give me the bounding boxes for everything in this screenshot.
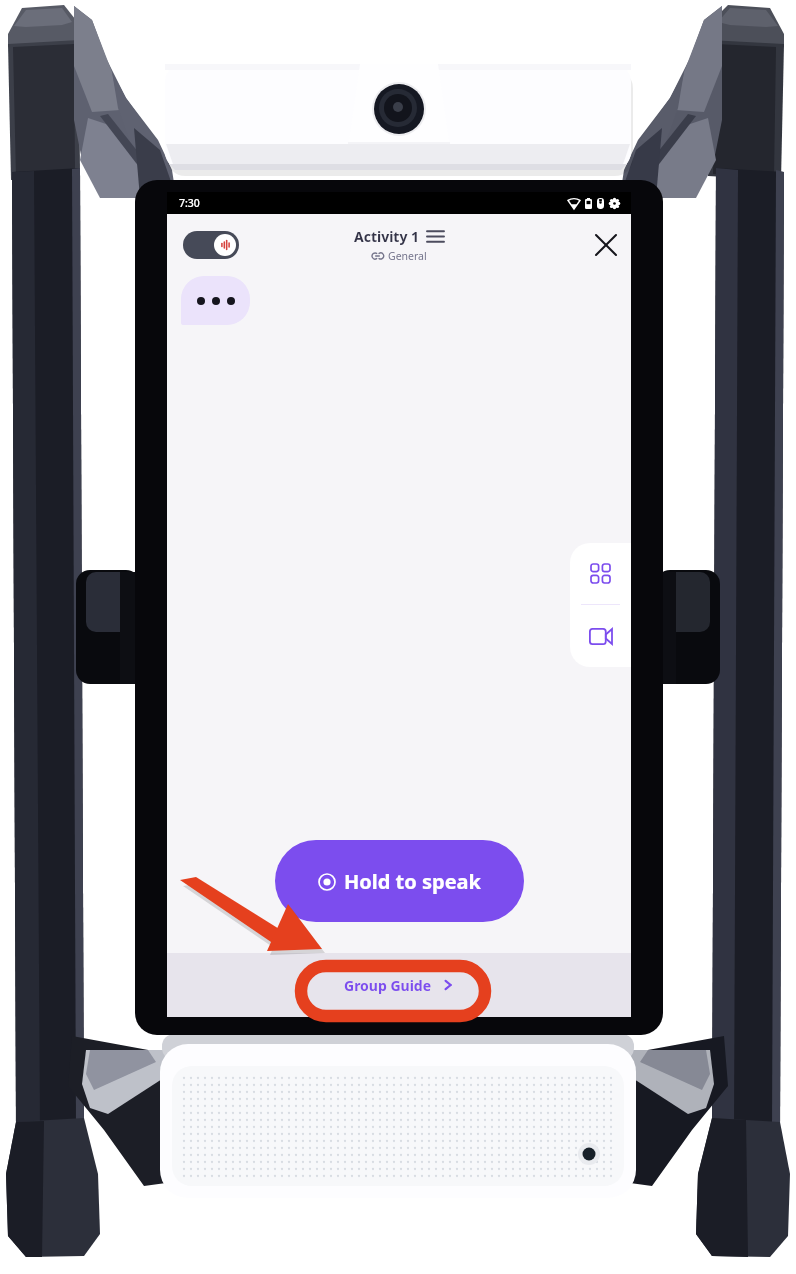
staticText: Activity 1 [354, 227, 420, 246]
staticText: 7:30 [179, 196, 200, 210]
button[interactable]: Hold to speak [275, 840, 524, 922]
button[interactable]: Video [570, 605, 631, 667]
button[interactable]: Microphone toggle [183, 231, 239, 259]
button[interactable]: Close [588, 227, 624, 263]
button[interactable]: Group Guide [313, 965, 485, 1005]
staticText: Group Guide [344, 976, 432, 995]
staticText: Hold to speak [344, 868, 481, 895]
staticText: General [388, 249, 427, 263]
button[interactable]: Apps [570, 543, 631, 604]
